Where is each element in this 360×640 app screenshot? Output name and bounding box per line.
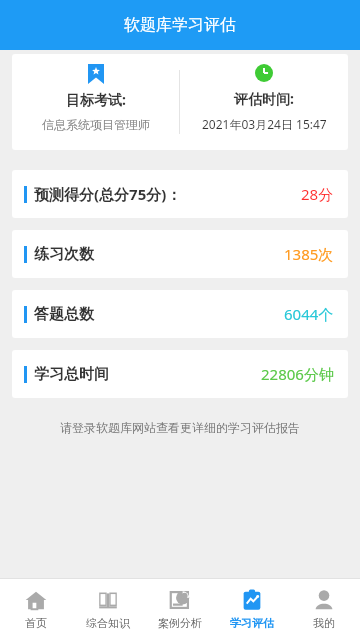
staticText: 信息系统项目管理师: [42, 117, 150, 132]
staticText: 请登录软题库网站查看更详细的学习评估报告: [60, 420, 300, 435]
button[interactable]: 综合知识: [72, 578, 144, 640]
button[interactable]: 目标考试:: [12, 54, 348, 150]
staticText: 2021年03月24日 15:47: [202, 116, 327, 132]
button[interactable]: 预测得分(总分75分)：: [12, 170, 348, 218]
staticText: 28分: [301, 184, 334, 204]
staticText: 答题总数: [34, 305, 94, 324]
staticText: 学习总时间: [34, 365, 109, 384]
button[interactable]: 答题总数: [12, 290, 348, 338]
staticText: 案例分析: [158, 616, 202, 630]
staticText: 目标考试:: [66, 90, 126, 109]
button[interactable]: 练习次数: [12, 230, 348, 278]
staticText: 我的: [313, 616, 335, 630]
button[interactable]: 我的: [288, 578, 360, 640]
staticText: 评估时间:: [234, 89, 294, 108]
staticText: 6044个: [284, 304, 334, 324]
button[interactable]: 学习总时间: [12, 350, 348, 398]
button[interactable]: 学习评估: [216, 578, 288, 640]
staticText: 综合知识: [86, 616, 130, 630]
staticText: 预测得分(总分75分)：: [34, 184, 182, 204]
staticText: 首页: [25, 616, 47, 630]
staticText: 软题库学习评估: [124, 15, 236, 35]
staticText: 1385次: [284, 244, 334, 264]
button[interactable]: 案例分析: [144, 578, 216, 640]
staticText: 22806分钟: [261, 364, 334, 384]
staticText: 学习评估: [230, 616, 274, 630]
button[interactable]: 首页: [0, 578, 72, 640]
staticText: 练习次数: [34, 245, 94, 264]
